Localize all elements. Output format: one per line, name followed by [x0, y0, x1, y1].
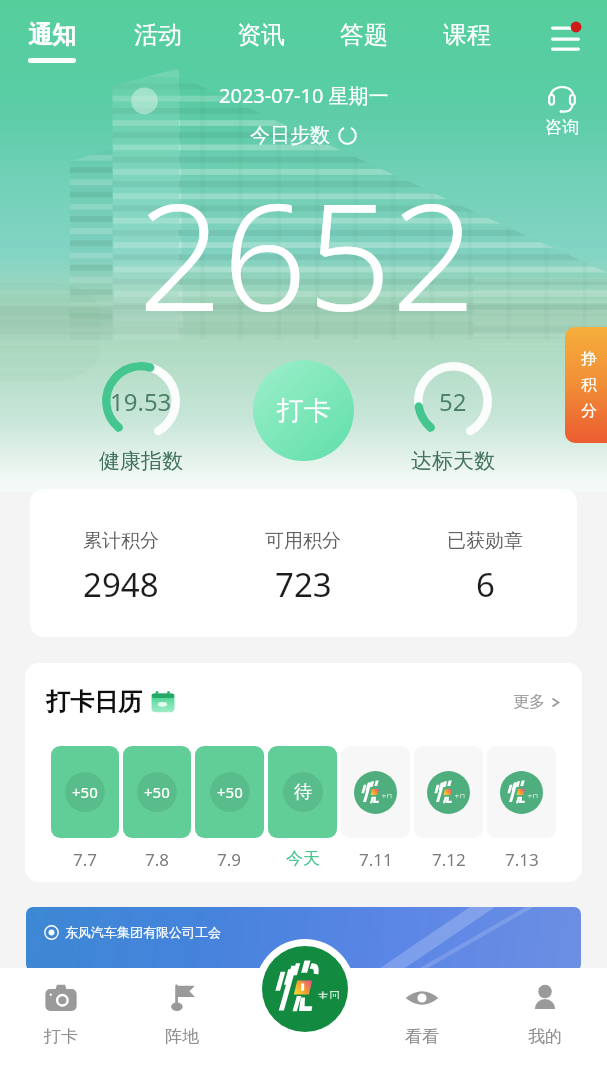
staticText: 可用积分 [265, 529, 341, 553]
staticText: 答题 [340, 20, 388, 50]
button[interactable]: 课程 [443, 0, 491, 72]
staticText: 达标天数 [411, 448, 495, 474]
staticText: 7.7 [73, 848, 98, 871]
staticText: +50 [72, 782, 98, 802]
button[interactable]: 52 [399, 362, 507, 474]
staticText: 课程 [443, 20, 491, 50]
staticText: 打卡 [44, 1026, 78, 1047]
staticText: 待 [294, 781, 312, 804]
staticText: 东风汽车集团有限公司工会 [65, 924, 221, 940]
button[interactable]: 更多 [513, 692, 561, 712]
staticText: 7.11 [359, 848, 393, 871]
staticText: 19.53 [110, 385, 172, 418]
staticText: 资讯 [237, 20, 285, 50]
button[interactable]: 7.13 [487, 746, 556, 871]
staticText: 打卡日历 [46, 687, 142, 717]
staticText: 打卡 [277, 394, 331, 428]
button[interactable]: 挣 积 分 [565, 327, 607, 443]
staticText: 活动 [134, 20, 182, 50]
staticText: 6 [476, 562, 495, 607]
staticText: 7.9 [217, 848, 242, 871]
button[interactable]: 累计积分 [75, 529, 167, 607]
button[interactable]: 东风汽车集团有限公司工会 [26, 907, 581, 971]
button[interactable]: 通知 [28, 0, 76, 72]
staticText: 通知 [28, 20, 76, 50]
button[interactable]: 打卡 [253, 360, 354, 461]
button[interactable]: 看看 [382, 984, 462, 1076]
staticText: 健康指数 [99, 448, 183, 474]
staticText: 已获勋章 [447, 529, 523, 553]
staticText: 7.12 [432, 848, 466, 871]
button[interactable]: 悦东风 [262, 946, 348, 1032]
button[interactable]: 我的 [505, 984, 585, 1076]
button[interactable]: 资讯 [237, 0, 285, 72]
staticText: 今日步数 [250, 123, 330, 148]
staticText: 2023-07-10 星期一 [219, 82, 389, 109]
button[interactable]: 7.12 [414, 746, 483, 871]
button[interactable]: 已获勋章 [439, 529, 531, 607]
button[interactable]: 咨询 [538, 84, 586, 138]
staticText: 看看 [405, 1026, 439, 1047]
staticText: 我的 [528, 1026, 562, 1047]
staticText: 挣 积 分 [581, 349, 597, 421]
button[interactable]: 活动 [134, 0, 182, 72]
staticText: 2948 [83, 562, 159, 607]
button[interactable]: 7.11 [341, 746, 410, 871]
button[interactable]: +50 [51, 746, 119, 871]
button[interactable]: +50 [195, 746, 264, 871]
staticText: 今天 [286, 848, 320, 869]
staticText: 更多 [513, 692, 545, 712]
staticText: 723 [275, 562, 332, 607]
staticText: +50 [217, 782, 243, 802]
staticText: 52 [439, 385, 467, 418]
button[interactable]: 阵地 [142, 984, 222, 1076]
staticText: 阵地 [165, 1026, 199, 1047]
button[interactable]: Menu [543, 16, 591, 60]
button[interactable]: +50 [123, 746, 191, 871]
staticText: 7.13 [505, 848, 539, 871]
button[interactable]: 可用积分 [257, 529, 349, 607]
button[interactable]: 答题 [340, 0, 388, 72]
staticText: 咨询 [545, 117, 579, 138]
staticText: 2652 [138, 153, 477, 355]
staticText: 7.8 [145, 848, 170, 871]
staticText: 累计积分 [83, 529, 159, 553]
button[interactable]: 待 [268, 746, 337, 869]
button[interactable]: 打卡 [21, 984, 101, 1076]
staticText: +50 [144, 782, 170, 802]
button[interactable]: 19.53 [87, 362, 195, 474]
